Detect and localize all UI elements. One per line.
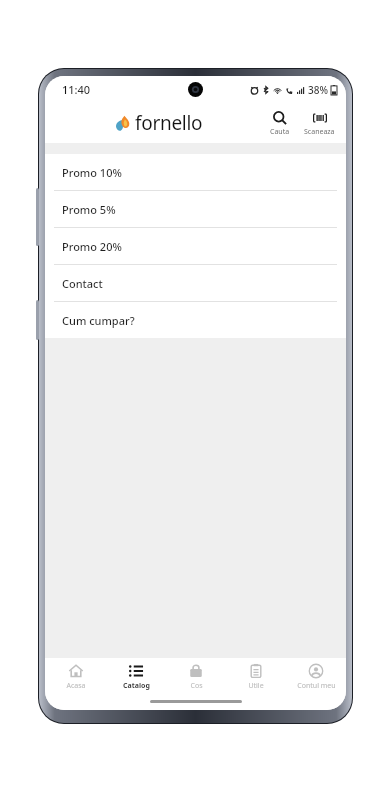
button[interactable]: Acasa bbox=[45, 660, 106, 694]
staticText: Promo 5% bbox=[62, 202, 116, 217]
staticText: Catalog bbox=[123, 681, 150, 691]
button[interactable]: Utile bbox=[226, 660, 286, 694]
staticText: Cos bbox=[190, 681, 203, 691]
staticText: Scaneaza bbox=[304, 127, 335, 137]
staticText: Utile bbox=[248, 681, 264, 691]
staticText: fornello bbox=[135, 110, 203, 136]
button[interactable]: Contact bbox=[45, 265, 346, 301]
staticText: Contul meu bbox=[297, 681, 336, 691]
button[interactable]: Promo 10% bbox=[45, 154, 346, 190]
staticText: Contact bbox=[62, 276, 103, 291]
staticText: Cauta bbox=[270, 127, 290, 137]
staticText: Acasa bbox=[66, 681, 86, 691]
button[interactable]: Contul meu bbox=[286, 660, 346, 694]
button[interactable]: Catalog bbox=[106, 660, 166, 694]
staticText: Promo 10% bbox=[62, 165, 122, 180]
button[interactable]: Promo 5% bbox=[45, 191, 346, 227]
button[interactable]: Cos bbox=[166, 660, 226, 694]
button[interactable]: Cum cumpar? bbox=[45, 302, 346, 338]
button[interactable]: Cauta bbox=[265, 108, 295, 139]
staticText: Promo 20% bbox=[62, 239, 122, 254]
staticText: 38% bbox=[308, 83, 328, 97]
staticText: 11:40 bbox=[62, 82, 91, 97]
button[interactable]: Promo 20% bbox=[45, 228, 346, 264]
button[interactable]: Scaneaza bbox=[299, 108, 340, 139]
button[interactable]: fornello bbox=[112, 110, 205, 136]
staticText: Cum cumpar? bbox=[62, 313, 135, 328]
